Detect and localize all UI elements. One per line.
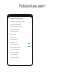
button[interactable]: Scheduled [8,52,32,55]
staticText: Grouping [10,38,17,40]
staticText: Choose what you see [10,20,25,22]
button[interactable]: Repeat alerts [8,47,32,50]
staticText: Notification style [10,25,23,27]
staticText: Suggestions [10,56,19,58]
staticText: Repeat alerts [10,48,20,50]
staticText: Notifications [10,17,24,20]
button[interactable]: Sounds [8,35,32,38]
staticText: Banners [10,33,17,35]
button[interactable]: Lock screen [8,29,32,32]
staticText: inbuilt on your device [21,6,44,9]
staticText: Time sensitive [10,46,21,48]
staticText: Scheduled [10,53,18,55]
button[interactable]: Suggestions [8,55,32,58]
button[interactable]: Notification style [8,24,32,27]
staticText: Critical alerts [10,51,20,53]
staticText: Dedicated app agent [19,4,46,7]
button[interactable]: Grouping [8,37,32,40]
staticText: Announce [10,41,18,43]
staticText: Lock screen [10,30,19,32]
button[interactable]: Time sensitive [8,45,32,48]
staticText: Show previews [10,23,21,25]
staticText: App badges [10,28,19,30]
staticText: Allow alerts [10,43,19,45]
staticText: Sounds [10,36,16,38]
button[interactable]: Announce [8,40,32,43]
button[interactable]: Allow alerts [8,42,32,45]
button[interactable]: Show previews [8,22,32,25]
button[interactable]: App badges [8,27,32,30]
button[interactable]: Critical alerts [8,50,32,53]
button[interactable]: Banners [8,32,32,35]
